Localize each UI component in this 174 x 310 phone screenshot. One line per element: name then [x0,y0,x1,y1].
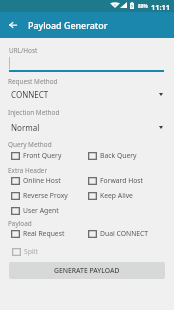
button[interactable]: Online Host [11,175,61,186]
button[interactable]: Dual CONNECT [88,228,149,239]
staticText: Split [24,247,38,256]
button[interactable]: Keep Alive [88,190,133,201]
button[interactable]: Reverse Proxy [11,190,68,201]
staticText: User Agent [23,206,59,215]
staticText: Payload [8,219,32,228]
staticText: 11:11 [151,2,170,12]
staticText: Query Method [8,140,52,149]
staticText: Normal [11,122,40,133]
staticText: Forward Host [100,176,144,185]
button[interactable]: GENERATE PAYLOAD [9,262,165,279]
staticText: Reverse Proxy [23,191,68,200]
staticText: Back Query [100,151,137,160]
staticText: Extra Header [8,166,48,175]
staticText: Online Host [23,176,61,185]
staticText: Real Request [23,229,65,238]
staticText: Injection Method [8,108,60,117]
button[interactable]: CONNECT [0,88,174,100]
button[interactable]: Forward Host [88,175,144,186]
staticText: 88% [138,3,148,10]
button[interactable]: Front Query [11,150,62,161]
staticText: URL/Host [9,46,38,55]
button[interactable]: Real Request [11,228,65,239]
staticText: Dual CONNECT [100,229,149,238]
staticText: Payload Generator [28,19,108,31]
staticText: CONNECT [11,89,49,100]
button[interactable]: Split [12,246,38,257]
button[interactable]: User Agent [11,205,59,216]
staticText: Request Method [8,77,58,86]
button[interactable]: Back Query [88,150,137,161]
staticText: Front Query [23,151,62,160]
staticText: GENERATE PAYLOAD [54,266,120,275]
staticText: Keep Alive [100,191,133,200]
button[interactable]: Normal [0,121,174,133]
button[interactable]: Back [1,13,25,37]
